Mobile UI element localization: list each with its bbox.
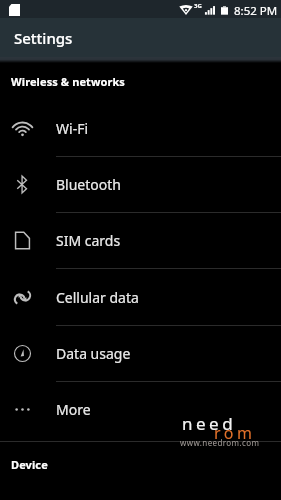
staticText: Bluetooth bbox=[56, 175, 121, 194]
staticText: www.needrom.com bbox=[180, 437, 260, 448]
staticText: More bbox=[56, 400, 91, 419]
staticText: SIM cards bbox=[56, 231, 121, 250]
staticText: Data usage bbox=[56, 344, 131, 363]
staticText: Device bbox=[11, 457, 48, 472]
staticText: rom bbox=[214, 422, 256, 444]
staticText: Settings bbox=[14, 28, 73, 48]
button[interactable]: SIM cards bbox=[0, 213, 281, 268]
button[interactable]: Wi-Fi bbox=[0, 101, 281, 156]
staticText: Wi-Fi bbox=[56, 119, 89, 138]
staticText: Cellular data bbox=[56, 288, 139, 307]
button[interactable]: More bbox=[0, 382, 281, 437]
button[interactable]: Cellular data bbox=[0, 269, 281, 325]
staticText: 3G bbox=[194, 2, 202, 10]
button[interactable]: Settings bbox=[0, 18, 281, 57]
button[interactable]: Data usage bbox=[0, 326, 281, 381]
staticText: Wireless & networks bbox=[11, 74, 125, 89]
staticText: 8:52 PM bbox=[234, 3, 278, 19]
button[interactable]: Bluetooth bbox=[0, 157, 281, 212]
staticText: need bbox=[182, 412, 237, 435]
